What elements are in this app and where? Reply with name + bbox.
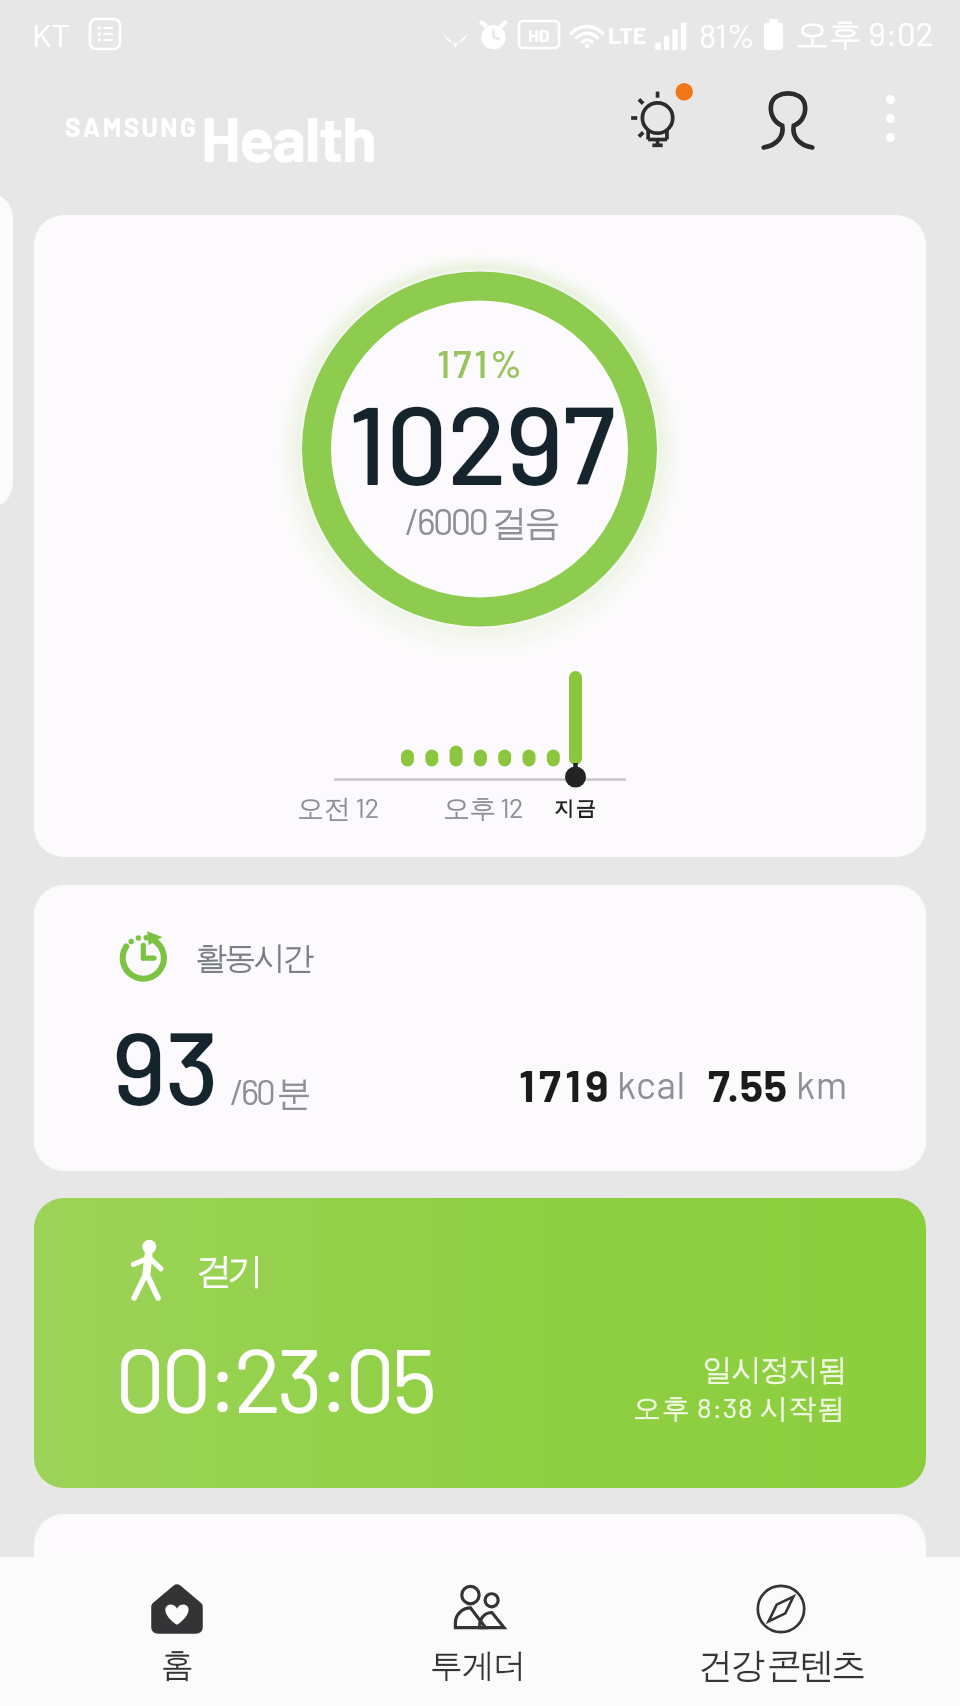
staticText: 일시정지됨 bbox=[703, 1351, 847, 1389]
staticText: /60 분 bbox=[230, 1070, 309, 1115]
staticText: /6000 걸음 bbox=[405, 499, 559, 546]
staticText: 홈 bbox=[161, 1644, 194, 1686]
staticText: 93 bbox=[112, 1002, 219, 1126]
staticText: SAMSUNG bbox=[65, 111, 199, 142]
staticText: kcal bbox=[617, 1061, 687, 1107]
staticText: 81% bbox=[699, 15, 755, 55]
staticText: 투게더 bbox=[430, 1645, 526, 1687]
staticText: HD bbox=[528, 25, 550, 45]
staticText: 7.55 bbox=[708, 1058, 788, 1111]
button[interactable]: 걷기 bbox=[34, 1198, 926, 1488]
staticText: 00:23:05 bbox=[115, 1324, 433, 1431]
staticText: 오후 8:38 시작됨 bbox=[633, 1390, 847, 1426]
button[interactable]: 활동시간 bbox=[34, 885, 926, 1171]
staticText: 10297 bbox=[348, 375, 615, 507]
staticText: 1719 bbox=[519, 1058, 613, 1111]
staticText: 오후 9:02 bbox=[796, 13, 934, 56]
staticText: 오후 12 bbox=[443, 791, 523, 826]
staticText: Health bbox=[201, 99, 376, 175]
staticText: 활동시간 bbox=[197, 938, 313, 978]
staticText: LTE bbox=[608, 21, 647, 49]
staticText: km bbox=[796, 1061, 848, 1107]
staticText: 171% bbox=[437, 340, 525, 386]
button[interactable]: More options bbox=[850, 78, 930, 158]
button[interactable]: 171% bbox=[34, 215, 926, 857]
staticText: 걷기 bbox=[196, 1248, 259, 1293]
staticText: 오전 12 bbox=[297, 791, 379, 826]
button[interactable]: 투게더 bbox=[368, 1557, 588, 1706]
staticText: 건강 콘텐츠 bbox=[698, 1642, 864, 1687]
button[interactable]: 건강 콘텐츠 bbox=[671, 1557, 891, 1706]
staticText: 지금 bbox=[554, 796, 598, 821]
button[interactable]: Profile bbox=[742, 72, 834, 164]
button[interactable]: 홈 bbox=[67, 1557, 287, 1706]
button[interactable]: Tips bbox=[616, 72, 708, 164]
staticText: KT bbox=[32, 15, 70, 53]
